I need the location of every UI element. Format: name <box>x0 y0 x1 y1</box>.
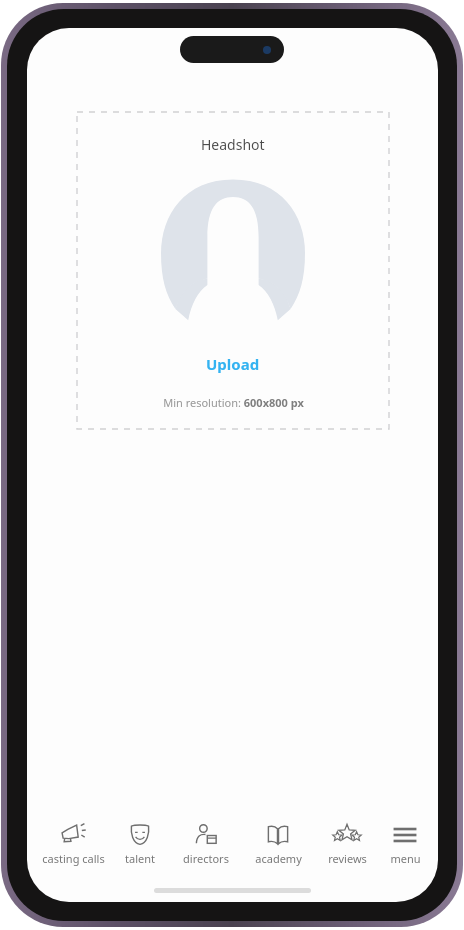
staticText: Upload <box>206 354 260 374</box>
button[interactable]: academy <box>249 816 307 866</box>
button[interactable]: directors <box>176 816 236 866</box>
staticText: Headshot <box>201 135 265 154</box>
staticText: directors <box>183 851 229 866</box>
staticText: Min resolution: 600x800 px <box>163 395 304 410</box>
button[interactable]: talent <box>118 816 162 866</box>
staticText: talent <box>125 851 155 866</box>
button[interactable]: reviews <box>321 816 373 866</box>
staticText: reviews <box>328 851 367 866</box>
button[interactable]: Upload <box>192 350 274 378</box>
button[interactable]: casting calls <box>41 816 105 866</box>
staticText: academy <box>255 851 302 866</box>
button[interactable]: menu <box>386 816 424 866</box>
staticText: casting calls <box>42 851 105 866</box>
staticText: menu <box>390 851 421 866</box>
